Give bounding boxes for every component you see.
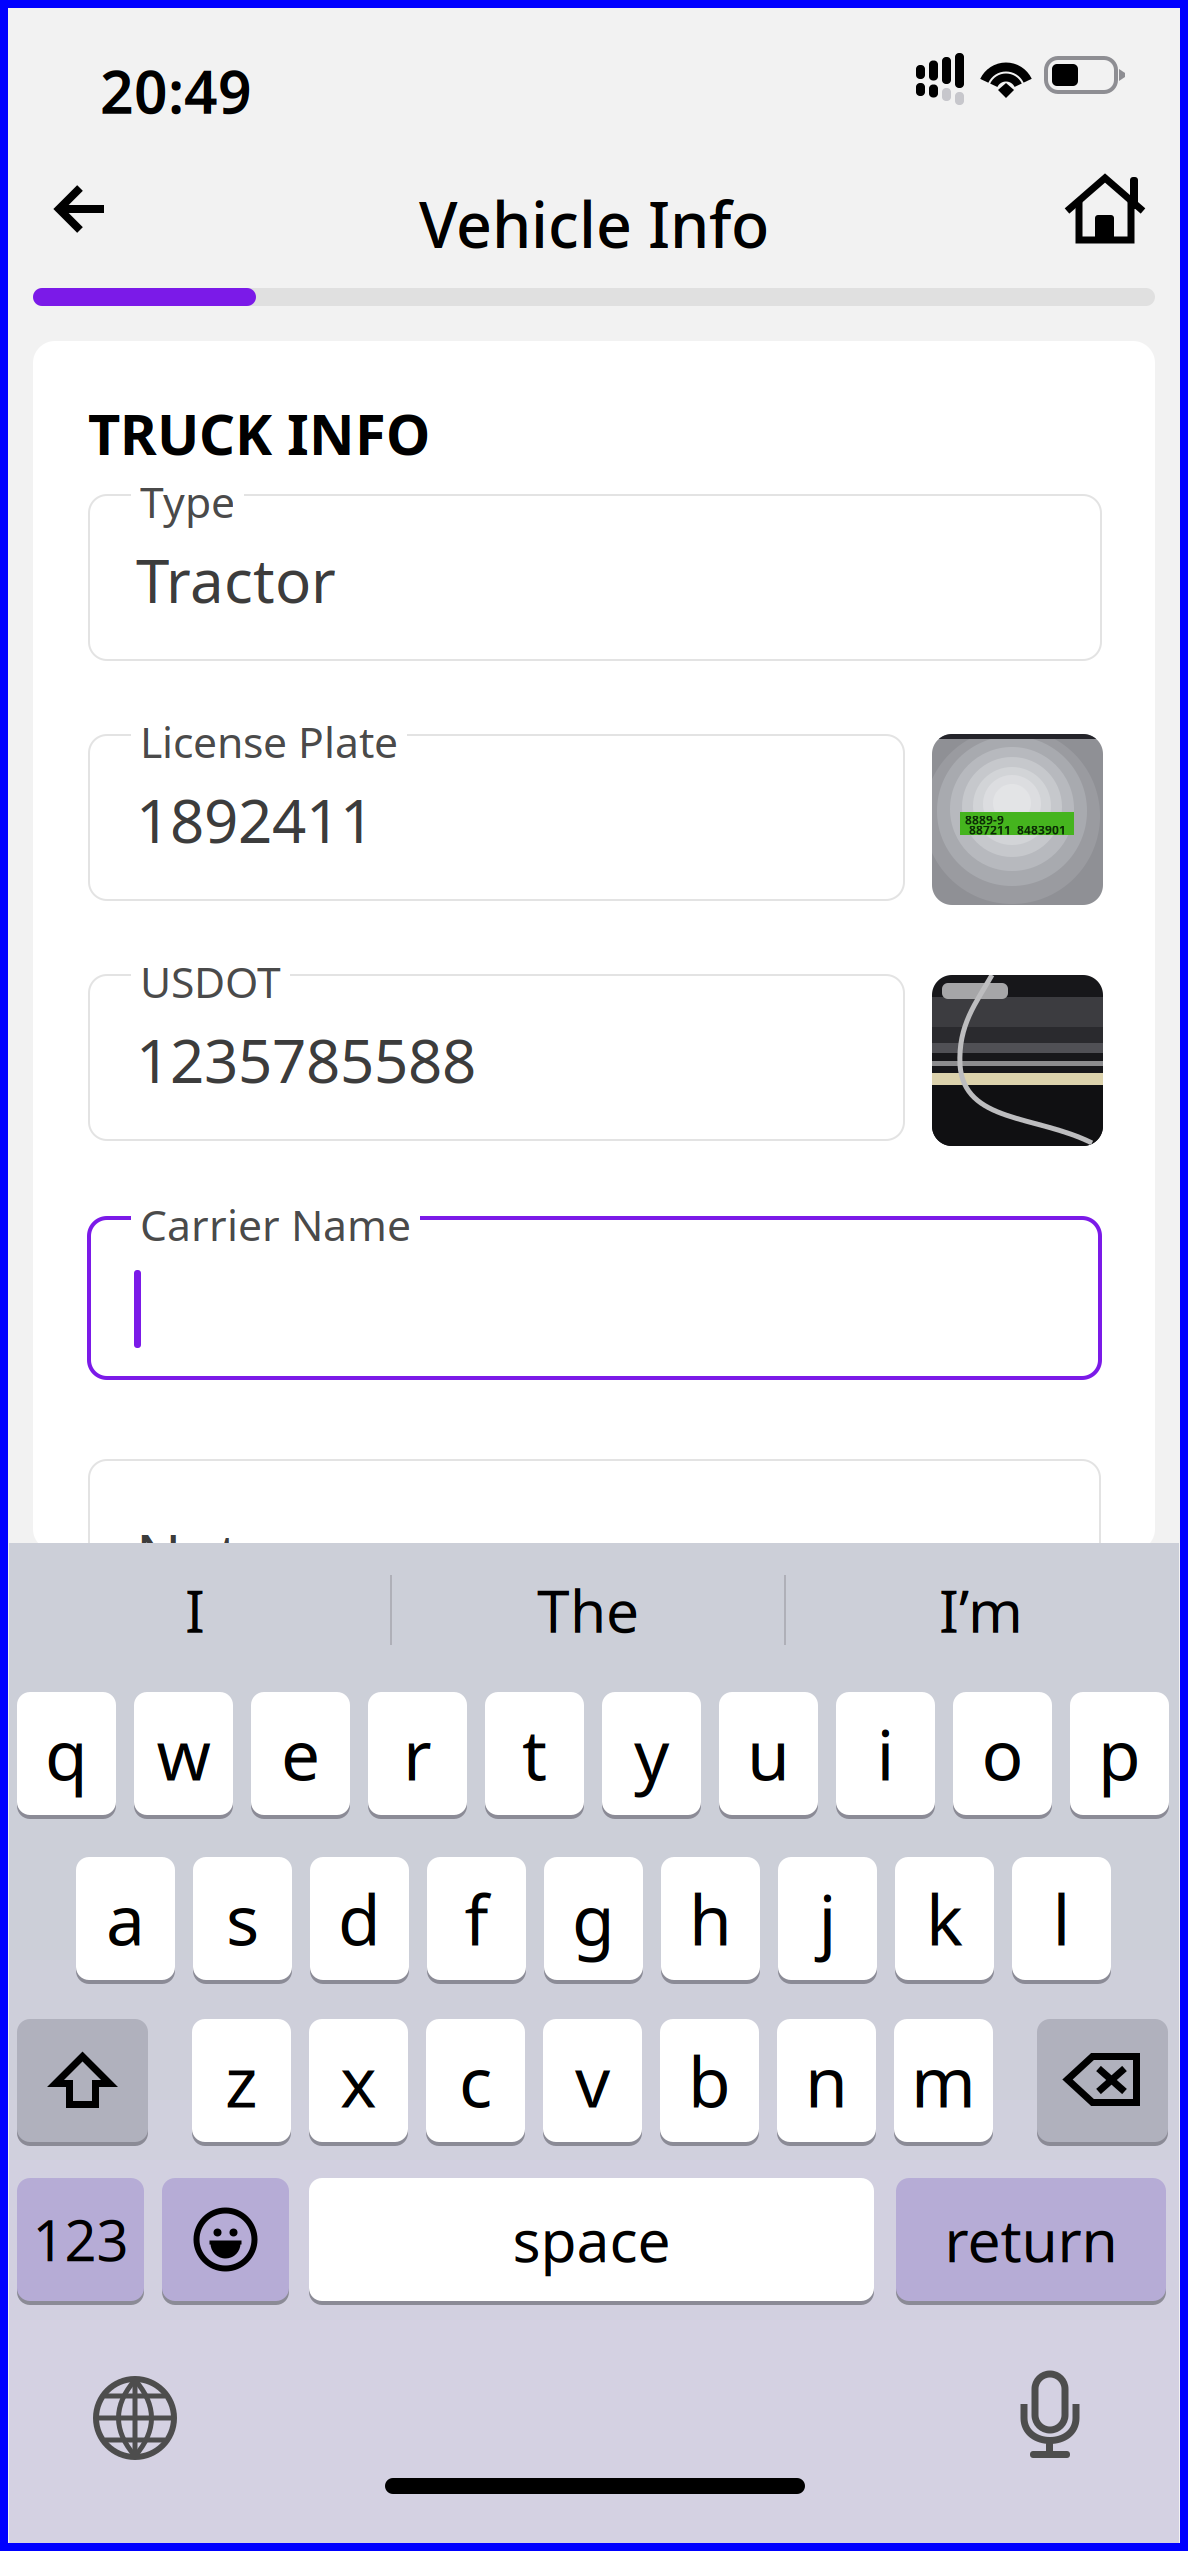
staticText: 1235785588: [136, 1020, 476, 1100]
staticText: p: [1098, 1707, 1141, 1800]
staticText: c: [459, 2034, 492, 2127]
staticText: h: [689, 1872, 732, 1965]
staticText: 123: [32, 2202, 128, 2277]
button[interactable]: z: [192, 2017, 291, 2144]
button[interactable]: k: [895, 1855, 994, 1982]
staticText: n: [805, 2034, 848, 2127]
button[interactable]: i: [836, 1690, 935, 1817]
button[interactable]: Emoji: [162, 2176, 289, 2303]
staticText: return: [944, 2200, 1117, 2278]
staticText: o: [981, 1707, 1023, 1800]
button[interactable]: r: [368, 1690, 467, 1817]
button[interactable]: return: [896, 2176, 1166, 2303]
staticText: k: [926, 1872, 963, 1965]
staticText: i: [876, 1707, 894, 1800]
staticText: The: [537, 1571, 639, 1649]
button[interactable]: License plate photo: [932, 734, 1103, 905]
button[interactable]: v: [543, 2017, 642, 2144]
button[interactable]: Home: [1064, 170, 1148, 250]
button[interactable]: I’m: [786, 1575, 1176, 1645]
button[interactable]: 123: [17, 2176, 144, 2303]
button[interactable]: Dictation: [1022, 2374, 1078, 2458]
staticText: t: [522, 1707, 547, 1800]
staticText: w: [156, 1707, 210, 1800]
button[interactable]: x: [309, 2017, 408, 2144]
button[interactable]: USDOT: [89, 953, 904, 1140]
button[interactable]: j: [778, 1855, 877, 1982]
staticText: u: [747, 1707, 790, 1800]
staticText: l: [1052, 1872, 1070, 1965]
button[interactable]: Delete: [1037, 2017, 1168, 2144]
staticText: Carrier Name: [140, 1196, 411, 1253]
button[interactable]: Notes: [89, 1460, 1101, 1543]
staticText: v: [575, 2034, 610, 2127]
staticText: Vehicle Info: [419, 182, 769, 265]
button[interactable]: y: [602, 1690, 701, 1817]
button[interactable]: a: [76, 1855, 175, 1982]
staticText: r: [403, 1707, 432, 1800]
button[interactable]: w: [134, 1690, 233, 1817]
button[interactable]: g: [544, 1855, 643, 1982]
staticText: 1892411: [136, 780, 374, 860]
button[interactable]: e: [251, 1690, 350, 1817]
button[interactable]: b: [660, 2017, 759, 2144]
staticText: Notes: [136, 1515, 303, 1595]
button[interactable]: l: [1012, 1855, 1111, 1982]
button[interactable]: n: [777, 2017, 876, 2144]
staticText: b: [688, 2034, 731, 2127]
button[interactable]: The: [392, 1575, 784, 1645]
button[interactable]: d: [310, 1855, 409, 1982]
staticText: Tractor: [136, 540, 336, 620]
staticText: s: [226, 1872, 259, 1965]
button[interactable]: s: [193, 1855, 292, 1982]
staticText: z: [225, 2034, 258, 2127]
button[interactable]: Carrier Name: [89, 1196, 1100, 1378]
staticText: y: [634, 1707, 669, 1800]
button[interactable]: Shift: [17, 2017, 148, 2144]
button[interactable]: f: [427, 1855, 526, 1982]
staticText: f: [464, 1872, 488, 1965]
button[interactable]: o: [953, 1690, 1052, 1817]
staticText: a: [106, 1872, 145, 1965]
button[interactable]: Back: [54, 185, 108, 233]
staticText: e: [281, 1707, 320, 1800]
staticText: 20:49: [100, 52, 252, 130]
button[interactable]: space: [309, 2176, 874, 2303]
staticText: USDOT: [140, 953, 281, 1010]
staticText: d: [338, 1872, 381, 1965]
staticText: I: [185, 1571, 205, 1649]
button[interactable]: m: [894, 2017, 993, 2144]
staticText: License Plate: [140, 713, 398, 770]
button[interactable]: I: [0, 1575, 390, 1645]
button[interactable]: p: [1070, 1690, 1169, 1817]
button[interactable]: h: [661, 1855, 760, 1982]
button[interactable]: t: [485, 1690, 584, 1817]
button[interactable]: Switch keyboard: [96, 2379, 174, 2457]
staticText: space: [512, 2200, 670, 2278]
staticText: q: [45, 1707, 88, 1800]
staticText: Type: [140, 473, 235, 530]
button[interactable]: c: [426, 2017, 525, 2144]
staticText: TRUCK INFO: [88, 396, 430, 470]
button[interactable]: License Plate: [89, 713, 904, 900]
button[interactable]: u: [719, 1690, 818, 1817]
staticText: m: [911, 2034, 976, 2127]
staticText: 887211 8483901: [969, 822, 1066, 838]
staticText: I’m: [939, 1571, 1023, 1649]
staticText: x: [340, 2034, 377, 2127]
button[interactable]: USDOT photo: [932, 975, 1103, 1146]
staticText: j: [818, 1872, 836, 1965]
staticText: g: [572, 1872, 615, 1965]
staticText: 8889-9: [965, 812, 1004, 828]
button[interactable]: Type: [89, 473, 1101, 660]
button[interactable]: q: [17, 1690, 116, 1817]
